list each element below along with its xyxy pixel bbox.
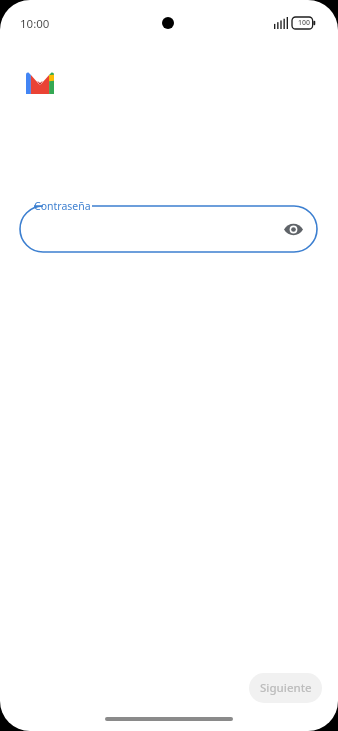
button[interactable]: Siguiente <box>249 673 322 703</box>
staticText: 10:00 <box>20 16 50 32</box>
staticText: 100 <box>294 18 314 28</box>
staticText: Siguiente <box>260 680 312 696</box>
button[interactable]: Mostrar contraseña <box>277 213 309 245</box>
button[interactable]: Mostrar contraseña <box>20 206 317 252</box>
staticText: Contraseña <box>34 199 91 213</box>
